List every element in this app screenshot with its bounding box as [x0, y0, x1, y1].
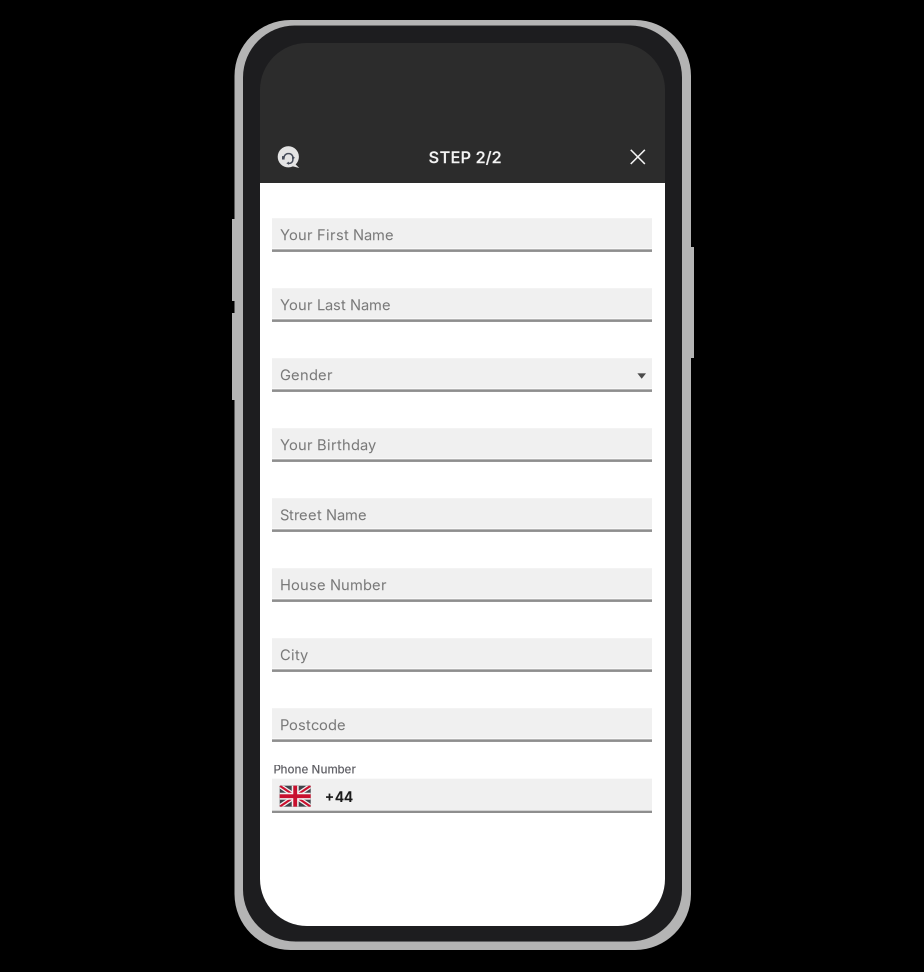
button[interactable]: House Number: [272, 568, 652, 602]
staticText: STEP 2/2: [428, 147, 501, 167]
button[interactable]: Close: [618, 140, 658, 174]
staticText: Your Birthday: [280, 436, 376, 454]
staticText: Your First Name: [280, 226, 394, 244]
button[interactable]: Your Last Name: [272, 288, 652, 322]
button[interactable]: Your Birthday: [272, 428, 652, 462]
button[interactable]: Postcode: [272, 708, 652, 742]
staticText: Phone Number: [273, 762, 355, 776]
button[interactable]: +44: [272, 779, 652, 813]
staticText: +44: [325, 789, 353, 806]
staticText: City: [280, 646, 308, 664]
button[interactable]: Contact support: [269, 140, 309, 174]
staticText: Gender: [280, 366, 333, 384]
button[interactable]: Street Name: [272, 498, 652, 532]
staticText: Your Last Name: [280, 296, 391, 314]
staticText: Postcode: [280, 716, 346, 734]
button[interactable]: City: [272, 638, 652, 672]
staticText: Street Name: [280, 506, 367, 524]
button[interactable]: Gender: [272, 358, 652, 392]
button[interactable]: Your First Name: [272, 218, 652, 252]
staticText: House Number: [280, 576, 387, 594]
